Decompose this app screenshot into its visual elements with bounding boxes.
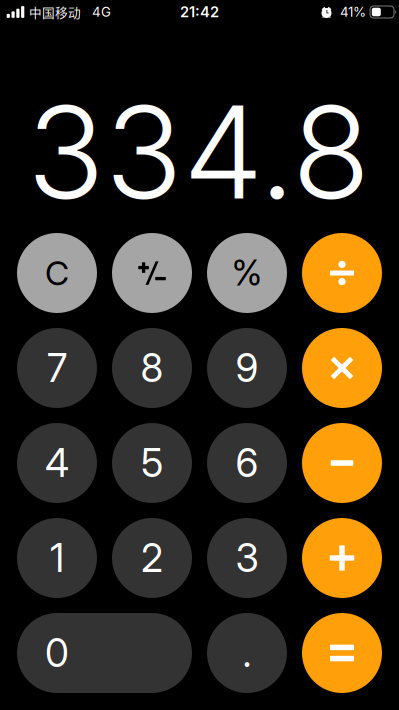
staticText: 9 [235,345,258,391]
button[interactable]: Toggle sign [112,233,192,313]
staticText: 334.8 [27,75,370,229]
staticText: 5 [141,440,163,486]
staticText: 0 [45,630,69,676]
staticText: . [242,630,251,676]
button[interactable]: 2 [112,518,192,598]
button[interactable]: Divide [302,233,382,313]
button[interactable]: Add [302,518,382,598]
button[interactable]: 5 [112,423,192,503]
staticText: 中国移动 [29,3,81,21]
button[interactable]: % [207,233,287,313]
staticText: 6 [235,440,258,486]
staticText: 21:42 [180,3,219,21]
button[interactable]: 3 [207,518,287,598]
button[interactable]: 0 [17,613,192,693]
staticText: C [45,253,69,293]
button[interactable]: 8 [112,328,192,408]
button[interactable]: 7 [17,328,97,408]
button[interactable]: Equals [302,613,382,693]
staticText: 3 [235,535,258,581]
staticText: 2 [141,535,163,581]
staticText: 41% [340,4,366,20]
button[interactable]: Subtract [302,423,382,503]
staticText: % [231,252,262,294]
staticText: 7 [47,345,67,391]
button[interactable]: Multiply [302,328,382,408]
button[interactable]: 9 [207,328,287,408]
staticText: 8 [140,345,163,391]
button[interactable]: 1 [17,518,97,598]
button[interactable]: . [207,613,287,693]
button[interactable]: C [17,233,97,313]
button[interactable]: 6 [207,423,287,503]
staticText: 4G [92,4,111,20]
staticText: 4 [45,440,69,486]
button[interactable]: 4 [17,423,97,503]
staticText: 1 [50,535,64,581]
